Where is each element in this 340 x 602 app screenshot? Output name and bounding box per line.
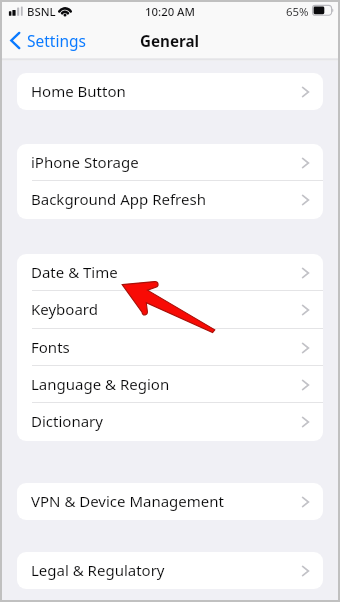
button[interactable]: Keyboard [17, 291, 323, 329]
staticText: VPN & Device Management [31, 491, 301, 511]
staticText: Dictionary [31, 411, 301, 431]
button[interactable]: Dictionary [17, 403, 323, 441]
staticText: Settings [27, 30, 86, 51]
button[interactable]: Background App Refresh [17, 181, 323, 219]
button[interactable]: VPN & Device Management [17, 483, 323, 520]
other: Wi-Fi [56, 3, 74, 18]
button[interactable]: Home Button [17, 73, 323, 110]
staticText: BSNL [27, 4, 56, 20]
staticText: Date & Time [31, 262, 301, 282]
button[interactable]: Settings [8, 27, 92, 59]
staticText: Keyboard [31, 299, 301, 319]
staticText: iPhone Storage [31, 152, 301, 172]
other: Cellular signal [7, 4, 25, 18]
button[interactable]: iPhone Storage [17, 144, 323, 181]
button[interactable]: Language & Region [17, 366, 323, 403]
button[interactable]: Legal & Regulatory [17, 552, 323, 589]
staticText: Fonts [31, 337, 301, 357]
staticText: General [140, 31, 200, 52]
staticText: 65% [286, 4, 309, 20]
button[interactable]: Fonts [17, 329, 323, 366]
staticText: Home Button [31, 81, 301, 101]
button[interactable]: Date & Time [17, 254, 323, 291]
staticText: Language & Region [31, 374, 301, 394]
staticText: Background App Refresh [31, 189, 301, 209]
staticText: Legal & Regulatory [31, 560, 301, 580]
staticText: 10:20 AM [145, 4, 196, 20]
